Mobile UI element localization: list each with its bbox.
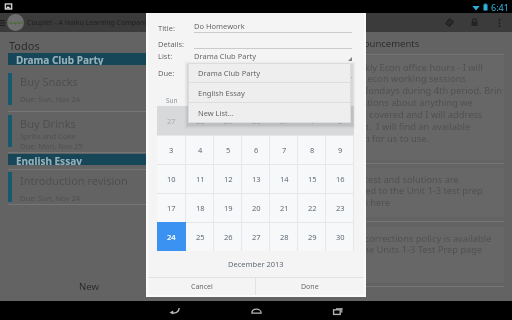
staticText: Thu [278, 96, 290, 105]
staticText: Buy Drinks [20, 116, 76, 131]
staticText: The test and solutions are posted to the… [346, 173, 483, 209]
staticText: 24 [167, 232, 176, 242]
button[interactable]: Lock [462, 13, 487, 32]
button[interactable]: 25 [186, 222, 214, 251]
staticText: 13 [252, 174, 261, 184]
button[interactable]: 6 [242, 135, 270, 164]
button[interactable]: The corrections policy is available on t… [340, 227, 504, 283]
button[interactable]: New [0, 271, 178, 301]
staticText: 29 [224, 116, 233, 126]
staticText: 19 [224, 203, 233, 213]
staticText: Done [301, 282, 319, 292]
button[interactable]: 18 [186, 193, 214, 222]
button[interactable]: 4 [186, 135, 214, 164]
button[interactable]: Buy Snacks [8, 73, 178, 105]
staticText: Drama Club Party [194, 51, 257, 61]
button[interactable]: 30 [242, 106, 270, 135]
staticText: 10 [167, 174, 176, 184]
button[interactable]: English Essay [8, 154, 178, 165]
button[interactable]: 24 [157, 222, 186, 251]
staticText: Do Homework [194, 21, 245, 31]
staticText: 11 [196, 174, 205, 184]
staticText: Announcements [346, 37, 420, 50]
button[interactable]: 5 [214, 135, 242, 164]
button[interactable]: 29 [298, 222, 326, 251]
staticText: Introduction revision [20, 173, 128, 188]
staticText: 23 [336, 203, 345, 213]
staticText: 25 [196, 232, 205, 242]
staticText: New [79, 280, 99, 293]
staticText: 22 [308, 203, 317, 213]
button[interactable]: 28 [270, 222, 298, 251]
button[interactable]: Cancel [148, 278, 255, 295]
button[interactable]: More options [487, 13, 511, 32]
staticText: 9 [338, 145, 343, 155]
button[interactable]: 11 [186, 164, 214, 193]
staticText: Due: Sun, Nov 24 [20, 193, 81, 203]
button[interactable]: 26 [214, 222, 242, 251]
staticText: 15 [308, 174, 317, 184]
staticText: 6 [254, 145, 259, 155]
button[interactable]: 27 [157, 106, 186, 135]
button[interactable]: 9 [326, 135, 354, 164]
button[interactable]: 8 [298, 135, 326, 164]
staticText: Cancel [191, 282, 213, 292]
staticText: Due: Sun, Nov 24 [20, 94, 81, 104]
button[interactable]: English Essay [188, 83, 351, 102]
button[interactable]: 1 [298, 106, 326, 135]
button[interactable]: 17 [157, 193, 186, 222]
staticText: 8 [310, 145, 315, 155]
button[interactable]: 20 [242, 193, 270, 222]
staticText: 20 [252, 203, 261, 213]
button[interactable]: 15 [298, 164, 326, 193]
button[interactable]: Weekly Econ office hours - I will host e… [340, 56, 504, 160]
button[interactable]: Couplet logo [7, 14, 24, 31]
button[interactable]: 12 [214, 164, 242, 193]
staticText: 27 [252, 232, 261, 242]
button[interactable]: Recent apps [316, 301, 360, 320]
staticText: 2 [338, 116, 343, 126]
staticText: 21 [280, 203, 289, 213]
staticText: 28 [280, 232, 289, 242]
button[interactable]: Tag [437, 13, 462, 32]
staticText: 31 [280, 116, 289, 126]
button[interactable]: 29 [214, 106, 242, 135]
button[interactable]: Drama Club Party [194, 51, 352, 61]
button[interactable]: 31 [270, 106, 298, 135]
button[interactable]: Buy Drinks [8, 115, 178, 151]
button[interactable]: Done [256, 278, 364, 295]
button[interactable]: 10 [157, 164, 186, 193]
staticText: List: [158, 51, 194, 61]
button[interactable]: Open navigation drawer [0, 13, 6, 32]
button[interactable]: The test and solutions are posted to the… [340, 168, 504, 217]
staticText: Wed [249, 96, 263, 105]
staticText: Title: [158, 23, 194, 33]
staticText: 29 [308, 232, 317, 242]
button[interactable]: 27 [242, 222, 270, 251]
staticText: 16 [336, 174, 345, 184]
staticText: 7 [282, 145, 287, 155]
staticText: 12 [224, 174, 233, 184]
button[interactable]: 13 [242, 164, 270, 193]
button[interactable]: 22 [298, 193, 326, 222]
button[interactable]: Drama Club Party [8, 53, 178, 65]
button[interactable]: Home [234, 301, 278, 320]
button[interactable]: 14 [270, 164, 298, 193]
staticText: English Essay [16, 154, 82, 165]
button[interactable]: 3 [157, 135, 186, 164]
button[interactable]: Introduction revision [8, 172, 178, 203]
button[interactable]: New List... [188, 103, 351, 122]
button[interactable]: 28 [186, 106, 214, 135]
staticText: New List... [198, 108, 234, 118]
button[interactable]: Back [152, 301, 196, 320]
staticText: December 2013 [228, 259, 284, 269]
button[interactable]: 7 [270, 135, 298, 164]
staticText: Couplet [7, 20, 24, 26]
button[interactable]: 16 [326, 164, 354, 193]
button[interactable]: 30 [326, 222, 354, 251]
button[interactable]: Drama Club Party [188, 63, 351, 82]
button[interactable]: 19 [214, 193, 242, 222]
button[interactable]: 21 [270, 193, 298, 222]
button[interactable]: 23 [326, 193, 354, 222]
button[interactable]: 2 [326, 106, 354, 135]
